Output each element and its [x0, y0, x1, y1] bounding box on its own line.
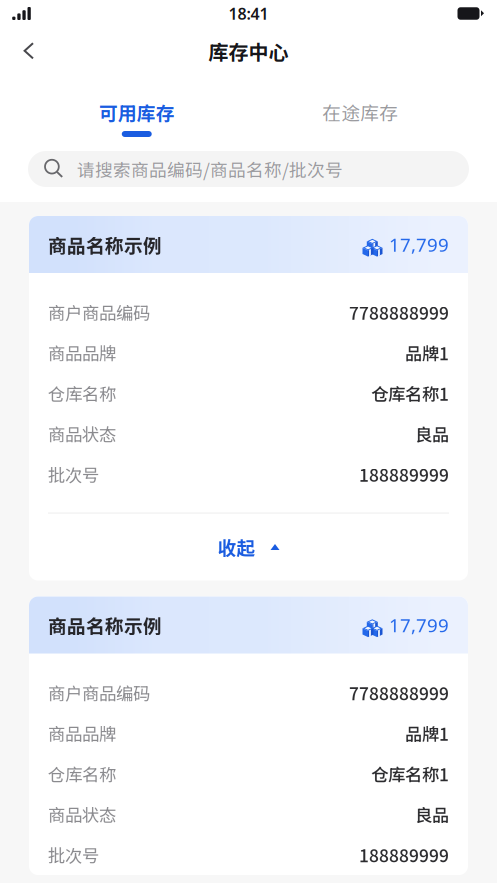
staticText: 仓库名称1	[371, 381, 449, 406]
staticText: 可用库存	[99, 98, 175, 125]
staticText: 收起	[217, 533, 255, 560]
staticText: 品牌1	[405, 721, 449, 746]
staticText: 良品	[415, 802, 449, 827]
button[interactable]: 在途库存	[248, 90, 472, 137]
staticText: 仓库名称1	[371, 761, 449, 786]
staticText: 商户商品编码	[48, 680, 150, 705]
button[interactable]: Back	[6, 28, 52, 74]
staticText: 商品品牌	[48, 340, 116, 365]
staticText: 商品状态	[48, 421, 116, 446]
staticText: 商品名称示例	[48, 231, 162, 258]
staticText: 商户商品编码	[48, 300, 150, 325]
staticText: 商品名称示例	[48, 611, 162, 638]
staticText: 批次号	[48, 842, 99, 867]
staticText: 188889999	[359, 462, 449, 487]
staticText: 仓库名称	[48, 761, 116, 786]
staticText: 7788888999	[349, 680, 449, 705]
button[interactable]: 收起	[29, 513, 468, 580]
staticText: 在途库存	[322, 98, 398, 125]
staticText: 商品状态	[48, 802, 116, 827]
staticText: 品牌1	[405, 340, 449, 365]
staticText: 17,799	[389, 232, 449, 257]
staticText: 17,799	[389, 613, 449, 637]
button[interactable]: 请搜索商品编码/商品名称/批次号	[28, 151, 469, 187]
staticText: 商品品牌	[48, 721, 116, 746]
button[interactable]: 可用库存	[25, 90, 248, 137]
staticText: 18:41	[228, 3, 268, 24]
staticText: 请搜索商品编码/商品名称/批次号	[77, 156, 343, 182]
staticText: 仓库名称	[48, 381, 116, 406]
staticText: 库存中心	[208, 36, 288, 65]
staticText: 7788888999	[349, 300, 449, 325]
staticText: 188889999	[359, 842, 449, 867]
staticText: 良品	[415, 421, 449, 446]
staticText: 批次号	[48, 462, 99, 487]
